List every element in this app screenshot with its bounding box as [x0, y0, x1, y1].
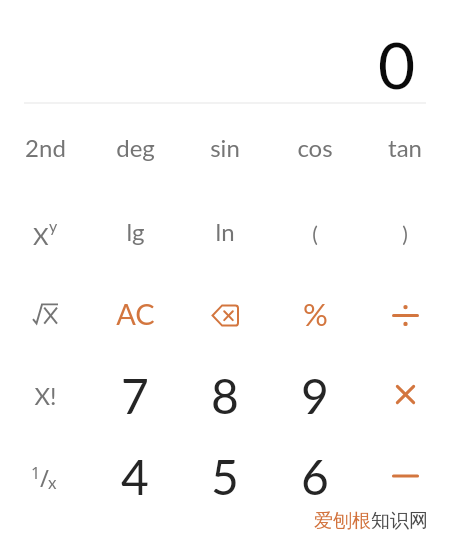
- staticText: 0: [378, 26, 416, 103]
- button[interactable]: cos: [270, 107, 360, 189]
- staticText: 4: [121, 448, 149, 506]
- staticText: 知识网: [371, 509, 428, 533]
- staticText: 7: [121, 367, 149, 425]
- staticText: X: [33, 221, 49, 250]
- button[interactable]: 5: [180, 435, 270, 517]
- staticText: 6: [301, 448, 329, 506]
- staticText: 9: [301, 367, 329, 425]
- button[interactable]: Minus: [360, 435, 450, 517]
- staticText: sin: [210, 133, 240, 162]
- button[interactable]: 6: [270, 435, 360, 517]
- button[interactable]: sin: [180, 107, 270, 189]
- staticText: 1: [31, 462, 41, 484]
- button[interactable]: One over x: [0, 435, 90, 517]
- staticText: 8: [211, 367, 239, 425]
- button[interactable]: AC: [90, 271, 180, 353]
- button[interactable]: 7: [90, 353, 180, 435]
- button[interactable]: X to the power of y: [0, 189, 90, 271]
- button[interactable]: 8: [180, 353, 270, 435]
- staticText: tan: [388, 133, 422, 162]
- button[interactable]: tan: [360, 107, 450, 189]
- staticText: deg: [116, 133, 155, 162]
- button[interactable]: 2nd: [0, 107, 90, 189]
- staticText: y: [49, 216, 58, 235]
- button[interactable]: deg: [90, 107, 180, 189]
- staticText: x: [48, 472, 57, 492]
- staticText: lg: [126, 217, 145, 246]
- button[interactable]: Multiply: [360, 353, 450, 435]
- button[interactable]: ln: [180, 189, 270, 271]
- staticText: %: [303, 295, 328, 332]
- staticText: ): [402, 221, 408, 246]
- staticText: cos: [297, 133, 333, 162]
- button[interactable]: %: [270, 271, 360, 353]
- staticText: AC: [116, 296, 155, 331]
- staticText: 爱刨根: [314, 509, 371, 533]
- button[interactable]: Divide: [360, 271, 450, 353]
- button[interactable]: Square root: [0, 271, 90, 353]
- staticText: /: [40, 461, 49, 494]
- staticText: 5: [211, 448, 239, 506]
- staticText: (: [312, 221, 318, 246]
- button[interactable]: lg: [90, 189, 180, 271]
- button[interactable]: (: [270, 189, 360, 271]
- button[interactable]: ): [360, 189, 450, 271]
- staticText: 2nd: [25, 133, 66, 162]
- button[interactable]: Factorial: [0, 353, 90, 435]
- button[interactable]: 9: [270, 353, 360, 435]
- button[interactable]: Backspace: [180, 271, 270, 353]
- staticText: ln: [215, 217, 235, 246]
- button[interactable]: 4: [90, 435, 180, 517]
- staticText: X!: [34, 381, 57, 410]
